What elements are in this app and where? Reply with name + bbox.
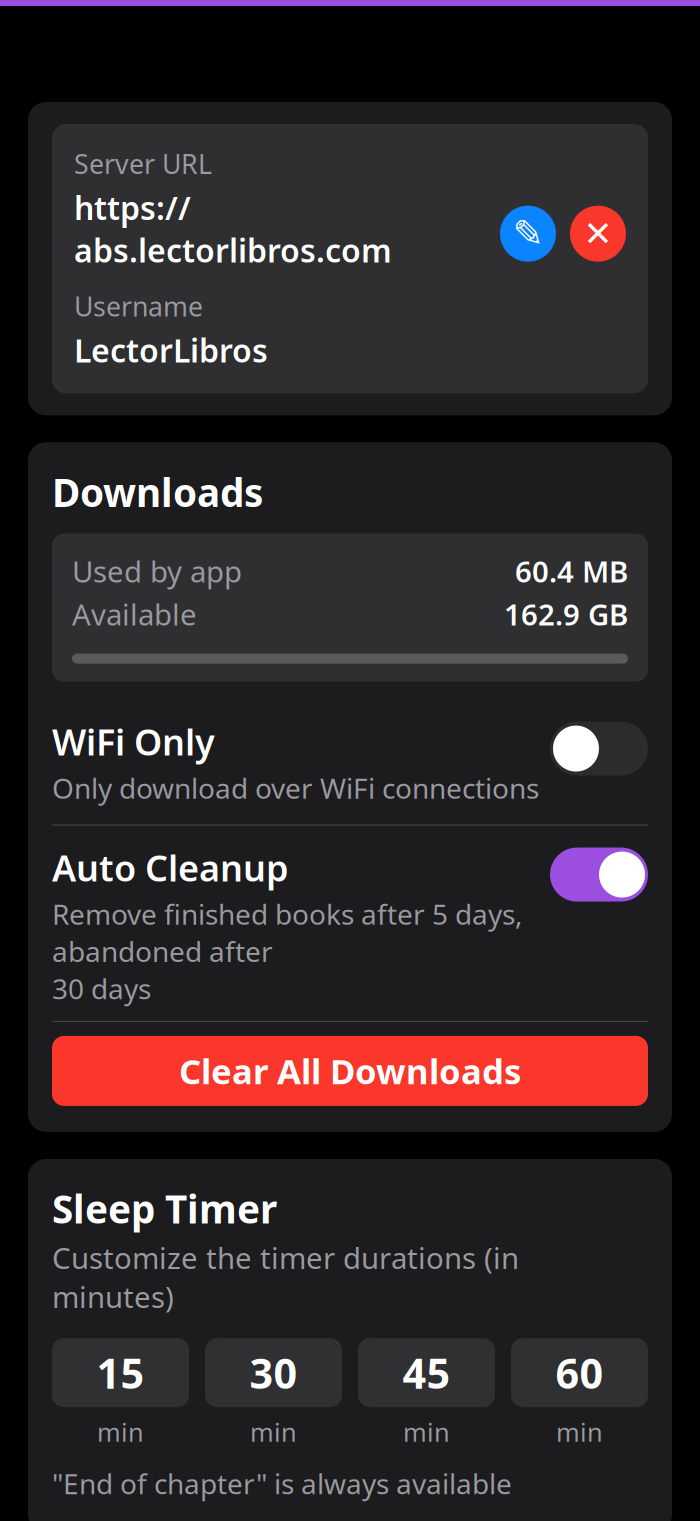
button[interactable]: WiFi Only bbox=[52, 718, 648, 807]
staticText: Only download over WiFi connections bbox=[52, 769, 539, 807]
staticText: Remove finished books after 5 days, aban… bbox=[52, 895, 523, 1007]
button[interactable]: 30 bbox=[205, 1338, 342, 1449]
staticText: 60 bbox=[555, 1345, 603, 1400]
button[interactable]: Edit server bbox=[500, 206, 556, 262]
staticText: Server URL bbox=[74, 146, 212, 181]
staticText: 60.4 MB bbox=[515, 552, 628, 591]
staticText: Available bbox=[72, 595, 197, 634]
staticText: 45 bbox=[402, 1345, 450, 1400]
staticText: Sleep Timer bbox=[52, 1183, 277, 1234]
staticText: min bbox=[250, 1415, 297, 1449]
staticText: Auto Cleanup bbox=[52, 844, 289, 891]
staticText: Used by app bbox=[72, 552, 242, 591]
staticText: Downloads bbox=[52, 466, 263, 518]
staticText: 15 bbox=[96, 1345, 144, 1400]
staticText: 30 bbox=[249, 1345, 297, 1400]
button[interactable]: 60 bbox=[511, 1338, 648, 1449]
staticText: "End of chapter" is always available bbox=[52, 1465, 512, 1502]
staticText: ✕ bbox=[583, 214, 612, 253]
staticText: https://abs.lectorlibros.com bbox=[74, 186, 392, 271]
button[interactable]: 15 bbox=[52, 1338, 189, 1449]
staticText: LectorLibros bbox=[74, 329, 268, 371]
staticText: ✎ bbox=[512, 212, 543, 255]
staticText: min bbox=[403, 1415, 450, 1449]
button[interactable]: 45 bbox=[358, 1338, 495, 1449]
staticText: Customize the timer durations (in minute… bbox=[52, 1238, 519, 1316]
staticText: 162.9 GB bbox=[504, 595, 628, 634]
staticText: WiFi Only bbox=[52, 718, 215, 765]
button[interactable]: Clear All Downloads bbox=[52, 1036, 648, 1106]
staticText: min bbox=[97, 1415, 144, 1449]
button[interactable]: Disconnect server bbox=[570, 206, 626, 262]
staticText: Clear All Downloads bbox=[179, 1048, 521, 1094]
button[interactable]: Auto Cleanup bbox=[52, 844, 648, 1007]
staticText: min bbox=[556, 1415, 603, 1449]
staticText: Username bbox=[74, 288, 203, 324]
